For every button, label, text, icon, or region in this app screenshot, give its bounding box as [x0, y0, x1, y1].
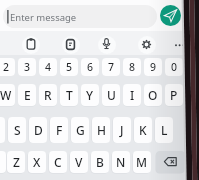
staticText: K — [139, 122, 147, 138]
button[interactable]: B — [91, 151, 109, 173]
staticText: P — [170, 87, 178, 103]
staticText: D — [34, 122, 43, 138]
staticText: B — [96, 154, 104, 170]
button[interactable]: O — [144, 84, 162, 106]
staticText: 9 — [150, 60, 157, 74]
staticText: 3 — [24, 60, 31, 74]
button[interactable]: U — [102, 84, 120, 106]
button[interactable]: L — [155, 117, 173, 143]
staticText: V — [75, 154, 83, 170]
staticText: S — [14, 122, 21, 138]
staticText: T — [66, 87, 73, 103]
button[interactable] — [0, 151, 6, 173]
button[interactable]: 0 — [165, 58, 183, 76]
button[interactable]: H — [92, 117, 110, 143]
button[interactable]: V — [70, 151, 88, 173]
staticText: Z — [13, 154, 20, 170]
button[interactable]: J — [113, 117, 131, 143]
staticText: E — [24, 87, 31, 103]
staticText: 8 — [129, 60, 136, 74]
button[interactable]: 6 — [81, 58, 99, 76]
staticText: J — [120, 122, 124, 138]
button[interactable]: S — [8, 117, 26, 143]
staticText: Y — [86, 87, 94, 103]
button[interactable]: X — [28, 151, 46, 173]
button[interactable]: C — [49, 151, 67, 173]
staticText: O — [148, 87, 158, 103]
staticText: 0 — [171, 60, 178, 74]
button[interactable] — [98, 36, 116, 54]
button[interactable]: P — [165, 84, 183, 106]
button[interactable]: 4 — [39, 58, 57, 76]
button[interactable]: 3 — [18, 58, 36, 76]
staticText: 2 — [3, 60, 10, 74]
staticText: X — [33, 154, 41, 170]
button[interactable]: K — [134, 117, 152, 143]
button[interactable]: A — [0, 117, 5, 143]
staticText: I — [130, 87, 135, 103]
button[interactable] — [156, 151, 185, 173]
button[interactable]: Y — [81, 84, 99, 106]
button[interactable]: N — [112, 151, 130, 173]
staticText: 7 — [108, 60, 115, 74]
button[interactable]: 2 — [0, 58, 15, 76]
staticText: W — [0, 87, 12, 103]
staticText: 6 — [87, 60, 94, 74]
staticText: M — [136, 154, 148, 170]
button[interactable]: D — [29, 117, 47, 143]
button[interactable] — [3, 5, 157, 28]
button[interactable]: 8 — [123, 58, 141, 76]
button[interactable] — [62, 36, 80, 54]
staticText: N — [116, 154, 126, 170]
button[interactable]: 7 — [102, 58, 120, 76]
button[interactable]: Z — [7, 151, 25, 173]
button[interactable]: R — [39, 84, 57, 106]
staticText: L — [161, 122, 168, 138]
button[interactable]: M — [133, 151, 151, 173]
button[interactable]: E — [18, 84, 36, 106]
staticText: F — [56, 122, 63, 138]
button[interactable] — [160, 5, 181, 26]
button[interactable]: 9 — [144, 58, 162, 76]
button[interactable] — [170, 36, 188, 54]
button[interactable]: F — [50, 117, 68, 143]
button[interactable] — [138, 36, 156, 54]
button[interactable]: 5 — [60, 58, 78, 76]
staticText: 5 — [66, 60, 73, 74]
staticText: G — [76, 122, 85, 138]
button[interactable]: W — [0, 84, 15, 106]
staticText: R — [44, 87, 52, 103]
button[interactable] — [22, 36, 40, 54]
staticText: 4 — [45, 60, 52, 74]
button[interactable]: I — [123, 84, 141, 106]
staticText: U — [107, 87, 116, 103]
staticText: H — [97, 122, 106, 138]
button[interactable]: T — [60, 84, 78, 106]
button[interactable]: G — [71, 117, 89, 143]
staticText: Enter message — [10, 11, 77, 24]
staticText: C — [54, 154, 62, 170]
